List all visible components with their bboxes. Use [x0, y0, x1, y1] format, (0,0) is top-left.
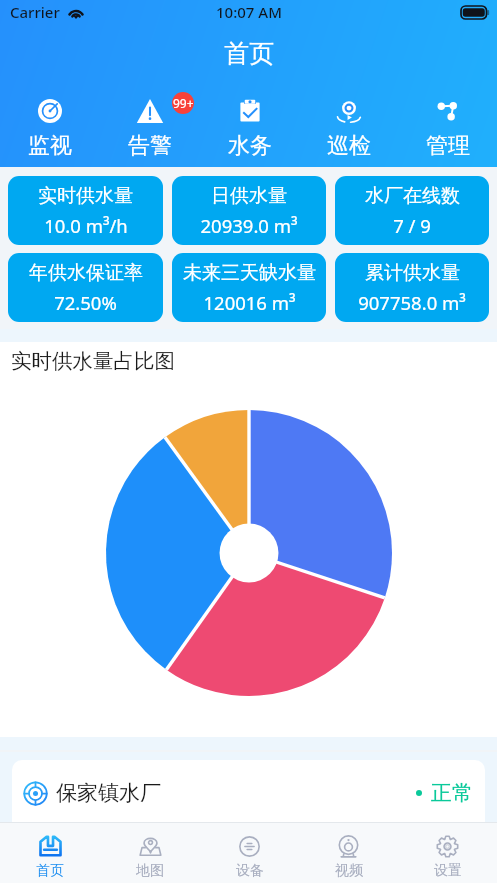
- button[interactable]: Inspection: [299, 99, 398, 160]
- staticText: 累计供水量: [365, 261, 460, 285]
- button[interactable]: 首页: [0, 823, 100, 883]
- staticText: 设置: [434, 862, 462, 880]
- button[interactable]: Management: [398, 99, 497, 160]
- button[interactable]: 设置: [398, 823, 497, 883]
- staticText: 正常: [431, 780, 473, 806]
- staticText: Carrier: [10, 2, 60, 22]
- staticText: 水务: [228, 132, 272, 160]
- staticText: 实时供水量占比图: [11, 348, 175, 374]
- button[interactable]: 地图: [100, 823, 200, 883]
- button[interactable]: Water affairs: [200, 99, 299, 160]
- staticText: 99+: [173, 95, 194, 111]
- staticText: 72.50%: [54, 290, 117, 315]
- button[interactable]: 年供水保证率: [8, 253, 163, 322]
- staticText: 巡检: [327, 132, 371, 160]
- staticText: 未来三天缺水量: [183, 261, 316, 285]
- staticText: 10:07 AM: [216, 2, 282, 22]
- button[interactable]: 设备: [200, 823, 299, 883]
- staticText: 水厂在线数: [365, 184, 460, 208]
- button[interactable]: Alarms: [100, 99, 200, 160]
- staticText: 告警: [128, 132, 172, 160]
- staticText: 地图: [136, 862, 164, 880]
- button[interactable]: 日供水量: [172, 176, 326, 245]
- staticText: 10.0 m³/h: [44, 213, 128, 238]
- staticText: 设备: [236, 862, 264, 880]
- staticText: 年供水保证率: [29, 261, 143, 285]
- button[interactable]: 累计供水量: [335, 253, 489, 322]
- staticText: 首页: [36, 862, 64, 880]
- staticText: 日供水量: [211, 184, 287, 208]
- button[interactable]: 实时供水量: [8, 176, 163, 245]
- button[interactable]: Monitoring: [0, 99, 100, 160]
- staticText: 120016 m³: [203, 290, 296, 315]
- staticText: 管理: [426, 132, 470, 160]
- staticText: 首页: [224, 38, 274, 69]
- staticText: 保家镇水厂: [56, 780, 161, 806]
- staticText: 视频: [335, 862, 363, 880]
- staticText: 20939.0 m³: [200, 213, 298, 238]
- button[interactable]: 视频: [299, 823, 398, 883]
- button[interactable]: 保家镇水厂: [12, 760, 485, 822]
- staticText: 7 / 9: [393, 213, 431, 238]
- staticText: 实时供水量: [38, 184, 133, 208]
- button[interactable]: 未来三天缺水量: [172, 253, 326, 322]
- staticText: 907758.0 m³: [358, 290, 466, 315]
- staticText: 监视: [28, 132, 72, 160]
- button[interactable]: 水厂在线数: [335, 176, 489, 245]
